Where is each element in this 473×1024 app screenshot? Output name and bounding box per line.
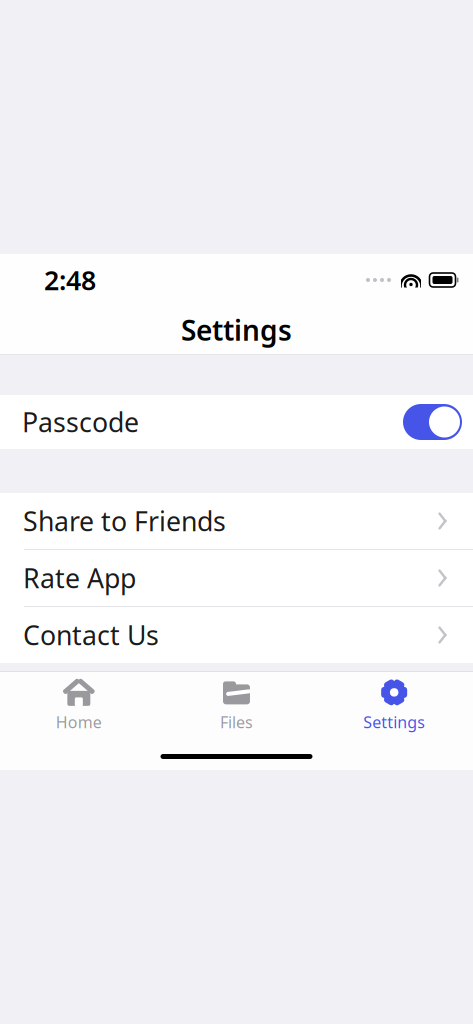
staticText: Settings: [181, 311, 292, 349]
staticText: Rate App: [23, 560, 136, 596]
button[interactable]: Home: [0, 676, 158, 734]
button[interactable]: Rate App: [0, 550, 473, 607]
staticText: 2:48: [44, 262, 96, 298]
staticText: Share to Friends: [23, 503, 226, 539]
button[interactable]: Contact Us: [0, 607, 473, 663]
staticText: Files: [220, 711, 253, 733]
staticText: Passcode: [22, 404, 139, 440]
staticText: Home: [56, 711, 102, 733]
button[interactable]: Passcode: [0, 395, 473, 449]
button[interactable]: Files: [158, 676, 315, 734]
staticText: Settings: [363, 711, 425, 733]
button[interactable]: Settings: [315, 676, 473, 734]
staticText: Contact Us: [23, 617, 159, 653]
button[interactable]: Share to Friends: [0, 493, 473, 550]
